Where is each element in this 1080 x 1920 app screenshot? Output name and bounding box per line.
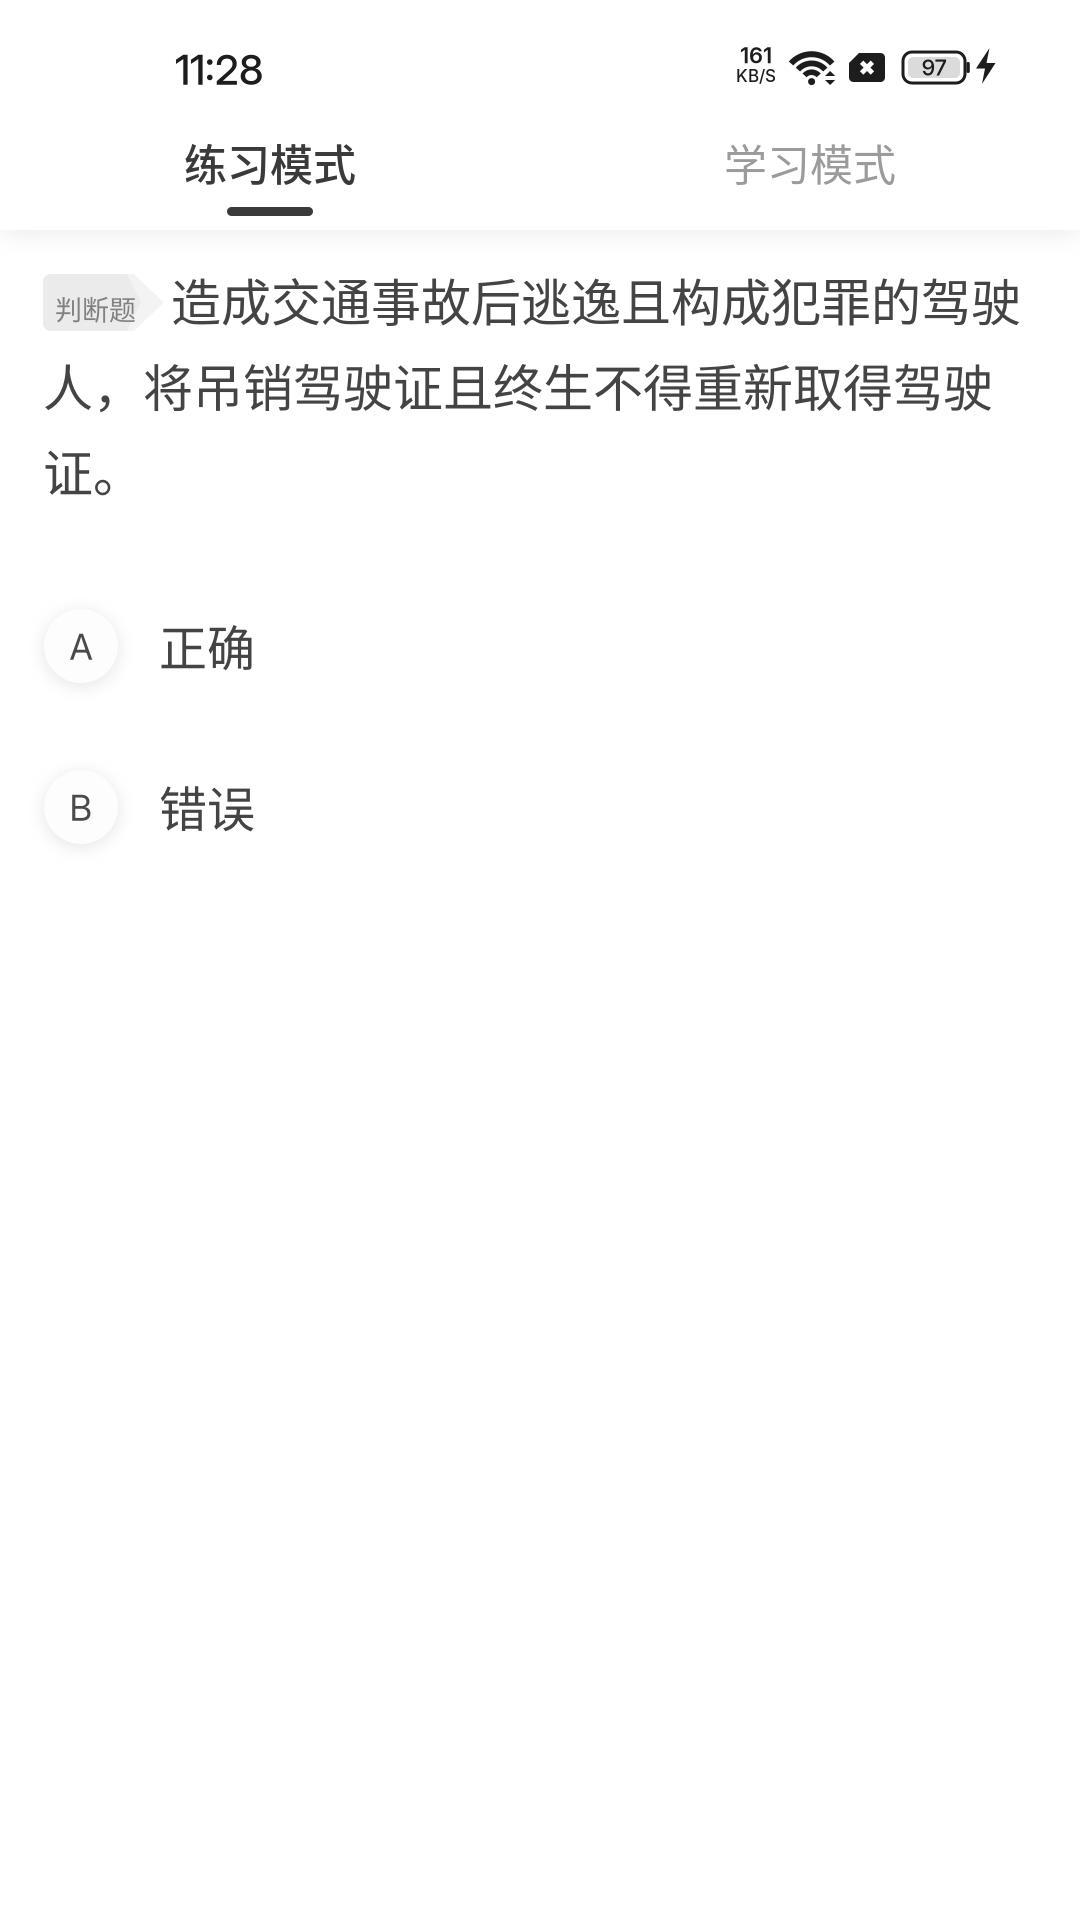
staticText: 11:28: [175, 45, 263, 95]
staticText: 97: [921, 54, 946, 81]
staticText: 正确: [159, 610, 255, 679]
button[interactable]: 练习模式: [0, 112, 540, 230]
staticText: KB/S: [736, 66, 776, 86]
staticText: 造成交通事故后逃逸且构成犯罪的驾驶人，将吊销驾驶证且终生不得重新取得驾驶证。: [43, 263, 1021, 506]
staticText: 161: [740, 42, 772, 69]
staticText: A: [69, 626, 92, 668]
staticText: 判断题: [55, 289, 136, 328]
staticText: 学习模式: [724, 131, 896, 193]
button[interactable]: A: [0, 566, 1080, 727]
staticText: 错误: [159, 771, 255, 840]
button[interactable]: B: [0, 727, 1080, 888]
staticText: 练习模式: [184, 131, 356, 193]
button[interactable]: 学习模式: [540, 112, 1080, 230]
staticText: B: [69, 787, 92, 829]
